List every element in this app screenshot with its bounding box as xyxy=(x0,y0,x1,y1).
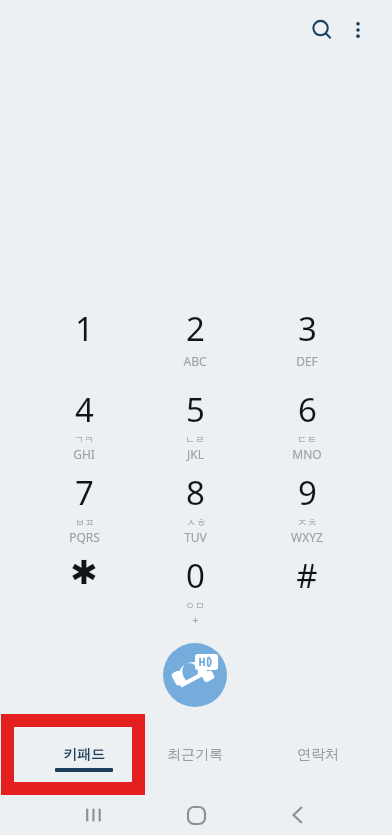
staticText: 6 xyxy=(298,387,317,432)
staticText: 4 xyxy=(75,387,94,432)
button[interactable]: 5 xyxy=(143,385,247,465)
button[interactable]: More options xyxy=(338,10,378,50)
staticText: # xyxy=(296,553,318,598)
button[interactable]: Back xyxy=(238,795,358,835)
staticText: 키패드 xyxy=(63,746,105,764)
staticText: JKL xyxy=(187,446,204,462)
button[interactable]: 최근기록 xyxy=(139,728,251,784)
button[interactable]: 3 xyxy=(255,304,359,384)
button[interactable]: 4 xyxy=(32,385,136,465)
staticText: 1 xyxy=(75,306,94,351)
button[interactable]: 연락처 xyxy=(262,728,374,784)
button[interactable]: 9 xyxy=(255,468,359,548)
staticText: 최근기록 xyxy=(167,746,223,764)
button[interactable]: ✱ xyxy=(32,551,136,631)
staticText: 7 xyxy=(75,470,94,515)
staticText: + xyxy=(192,612,199,627)
button[interactable]: 6 xyxy=(255,385,359,465)
button[interactable]: Search xyxy=(302,10,342,50)
button[interactable]: # xyxy=(255,551,359,631)
staticText: ㅅㅎ xyxy=(186,516,206,529)
staticText: ㅈㅊ xyxy=(297,516,317,529)
staticText: 연락처 xyxy=(297,746,339,764)
staticText: 2 xyxy=(186,306,205,351)
staticText: PQRS xyxy=(69,529,100,545)
staticText: 0 xyxy=(186,553,205,598)
button[interactable]: 2 xyxy=(143,304,247,384)
button[interactable]: 키패드 xyxy=(28,728,140,784)
staticText: ㄱㅋ xyxy=(74,433,94,446)
staticText: ㅇㅁ xyxy=(185,599,205,612)
staticText: 8 xyxy=(186,470,205,515)
staticText: DEF xyxy=(296,353,318,369)
staticText: 3 xyxy=(298,306,317,351)
staticText: 9 xyxy=(298,470,317,515)
staticText: TUV xyxy=(184,529,207,545)
staticText: ✱ xyxy=(70,553,98,591)
button[interactable]: 0 xyxy=(143,551,247,631)
staticText: MNO xyxy=(292,446,322,462)
staticText: ㄴㄹ xyxy=(185,433,205,446)
staticText: ㅂㅍ xyxy=(75,516,95,529)
button[interactable]: Home xyxy=(136,795,256,835)
button[interactable]: 7 xyxy=(32,468,136,548)
staticText: WXYZ xyxy=(291,529,323,545)
button[interactable]: 1 xyxy=(32,304,136,384)
staticText: GHI xyxy=(73,446,95,462)
staticText: ABC xyxy=(183,353,207,369)
button[interactable]: 8 xyxy=(143,468,247,548)
button[interactable]: Call xyxy=(163,643,227,707)
staticText: 5 xyxy=(186,387,205,432)
button[interactable]: Recents xyxy=(34,795,154,835)
staticText: ㄷㅌ xyxy=(297,433,317,446)
